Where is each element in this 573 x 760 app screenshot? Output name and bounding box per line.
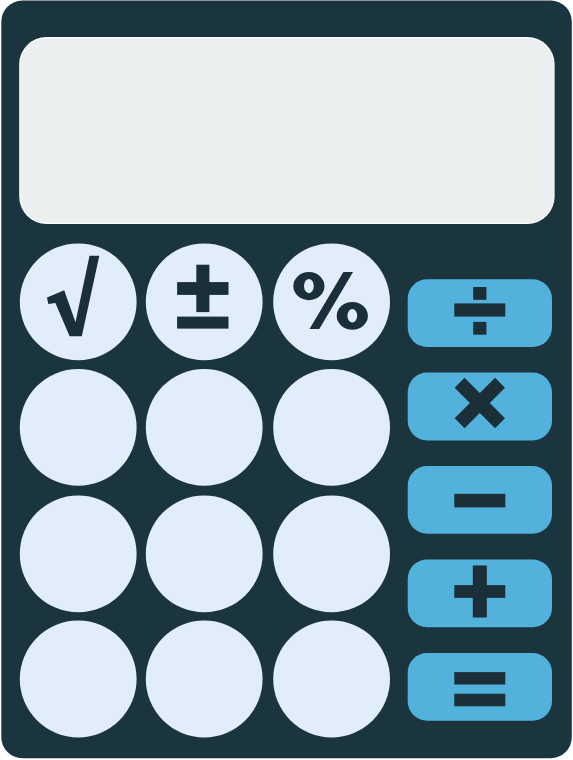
- button[interactable]: 6: [273, 496, 390, 613]
- button[interactable]: 1: [20, 621, 137, 738]
- button[interactable]: Square root: [20, 243, 137, 360]
- button[interactable]: Equals: [408, 653, 552, 721]
- button[interactable]: 2: [146, 621, 263, 738]
- button[interactable]: Percent: [273, 243, 390, 360]
- button[interactable]: Result display: [20, 37, 555, 223]
- button[interactable]: Plus minus: [146, 243, 263, 360]
- button[interactable]: Add: [408, 559, 552, 627]
- button[interactable]: 3: [273, 621, 390, 738]
- button[interactable]: 7: [20, 369, 137, 486]
- button[interactable]: 9: [273, 369, 390, 486]
- button[interactable]: 8: [146, 369, 263, 486]
- button[interactable]: 5: [146, 496, 263, 613]
- button[interactable]: Subtract: [408, 466, 552, 534]
- button[interactable]: Divide: [408, 279, 552, 347]
- button[interactable]: Multiply: [408, 373, 552, 441]
- button[interactable]: 4: [20, 496, 137, 613]
